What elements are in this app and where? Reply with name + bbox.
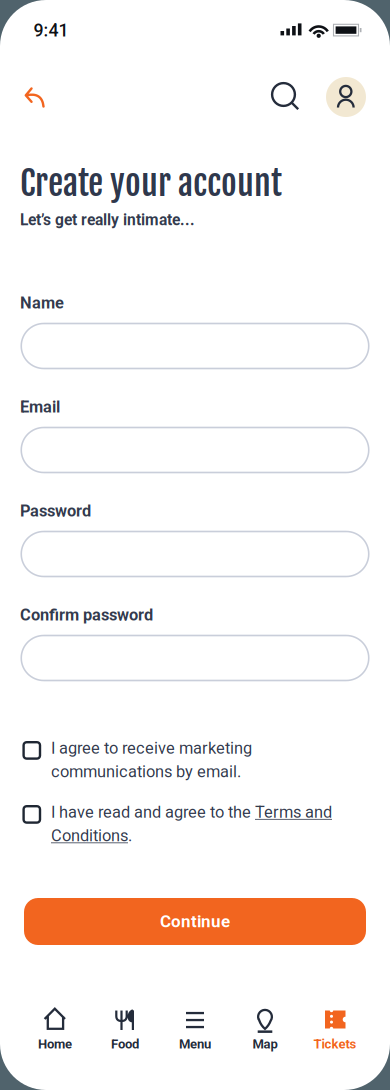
button[interactable]: Home — [21, 1002, 89, 1054]
button[interactable]: Continue — [24, 898, 366, 945]
staticText: Name — [20, 293, 64, 313]
button[interactable] — [21, 323, 369, 368]
staticText: Food — [111, 1036, 139, 1052]
staticText: Let’s get really intimate... — [20, 211, 195, 229]
button[interactable]: Food — [91, 1002, 159, 1054]
staticText: Create your account — [20, 162, 282, 204]
staticText: Menu — [179, 1036, 211, 1052]
staticText: I have read and agree to the Terms and C… — [51, 802, 332, 845]
button[interactable] — [18, 80, 52, 114]
button[interactable]: Tickets — [301, 1002, 369, 1054]
staticText: 9:41 — [33, 20, 68, 41]
staticText: I agree to receive marketing communicati… — [51, 738, 252, 781]
button[interactable] — [324, 75, 368, 119]
staticText: Map — [252, 1036, 277, 1052]
staticText: Home — [38, 1036, 72, 1052]
staticText: Email — [20, 397, 60, 417]
button[interactable]: Menu — [161, 1002, 229, 1054]
button[interactable] — [264, 75, 308, 119]
staticText: Password — [20, 501, 91, 521]
button[interactable] — [21, 531, 369, 576]
button[interactable]: Map — [231, 1002, 299, 1054]
button[interactable] — [21, 635, 369, 680]
staticText: Tickets — [313, 1036, 356, 1052]
staticText: Confirm password — [20, 605, 153, 625]
staticText: Continue — [160, 911, 230, 931]
button[interactable]: I have read and agree to the Terms and C… — [20, 802, 350, 846]
button[interactable]: I agree to receive marketing communicati… — [20, 738, 350, 782]
button[interactable] — [21, 427, 369, 472]
